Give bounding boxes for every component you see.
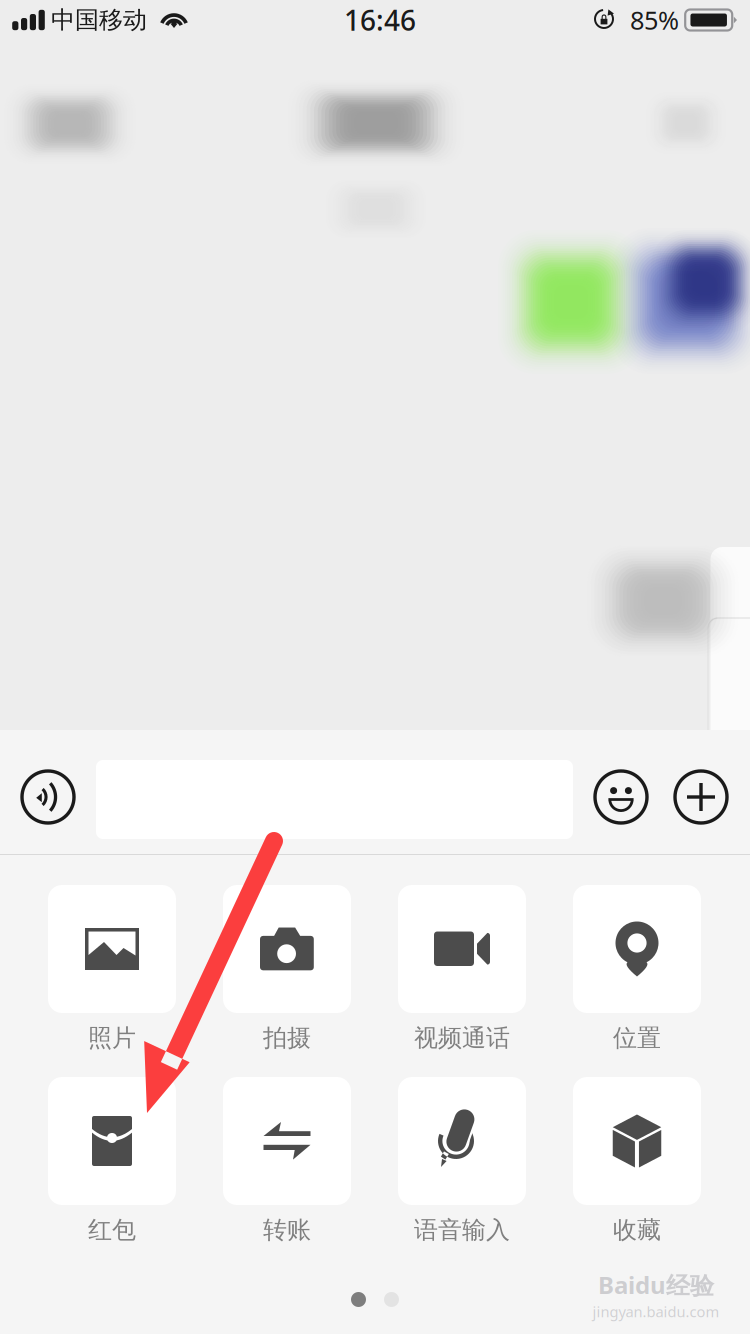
staticText: 收藏 [613,1215,661,1245]
button[interactable]: 位置 [573,885,701,1077]
staticText: 转账 [263,1215,311,1245]
staticText: 拍摄 [263,1023,311,1053]
staticText: Baidu经验 [598,1269,714,1301]
staticText: 视频通话 [414,1023,510,1053]
button[interactable]: 照片 [48,885,176,1077]
button[interactable]: Hold to talk [22,771,74,823]
staticText: 照片 [88,1023,136,1053]
button[interactable]: 视频通话 [398,885,526,1077]
button[interactable]: 语音输入 [398,1077,526,1269]
button[interactable]: 转账 [223,1077,351,1269]
button[interactable]: More [675,771,727,823]
staticText: jingyan.baidu.com [592,1302,719,1321]
button[interactable]: 红包 [48,1077,176,1269]
button[interactable]: 拍摄 [223,885,351,1077]
button[interactable]: Emoji [595,771,647,823]
staticText: 位置 [613,1023,661,1053]
staticText: 语音输入 [414,1215,510,1245]
button[interactable]: 收藏 [573,1077,701,1269]
staticText: 85% [630,3,679,37]
staticText: 中国移动 [51,5,147,35]
staticText: 16:46 [344,1,416,39]
button[interactable]: Message input field [96,760,573,839]
staticText: 红包 [88,1215,136,1245]
